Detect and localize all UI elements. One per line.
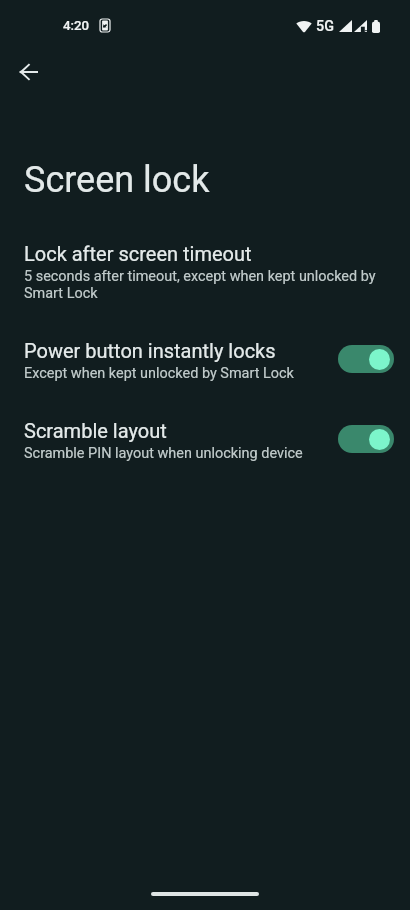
staticText: Power button instantly locks bbox=[24, 337, 276, 364]
button[interactable]: Scramble layout bbox=[0, 399, 410, 479]
button[interactable]: Navigate up bbox=[4, 48, 52, 96]
staticText: Scramble layout bbox=[24, 417, 167, 444]
button[interactable]: Lock after screen timeout bbox=[0, 222, 410, 319]
staticText: 5G bbox=[316, 18, 334, 35]
button[interactable]: Power button instantly locks, on bbox=[338, 345, 394, 373]
staticText: Scramble PIN layout when unlocking devic… bbox=[24, 444, 303, 461]
staticText: 5 seconds after timeout, except when kep… bbox=[24, 267, 386, 301]
staticText: Screen lock bbox=[24, 157, 210, 201]
button[interactable]: Scramble layout, on bbox=[338, 425, 394, 453]
staticText: Lock after screen timeout bbox=[24, 240, 252, 267]
staticText: Except when kept unlocked by Smart Lock bbox=[24, 364, 294, 381]
button[interactable]: Power button instantly locks bbox=[0, 319, 410, 399]
staticText: 4:20 bbox=[63, 18, 90, 34]
